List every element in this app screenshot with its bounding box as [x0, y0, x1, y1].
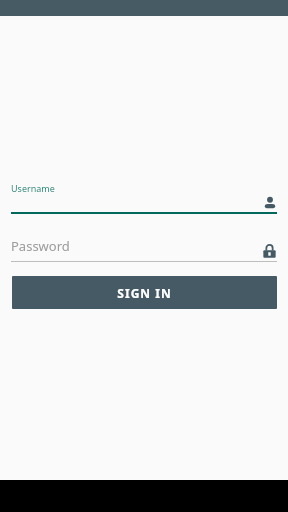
staticText: Username: [11, 182, 55, 194]
other: Password: [262, 244, 277, 259]
staticText: Password: [11, 237, 70, 255]
staticText: SIGN IN: [117, 285, 172, 301]
button[interactable]: Username: [0, 182, 288, 214]
other: Username: [263, 196, 277, 210]
button[interactable]: Password: [0, 237, 288, 262]
button[interactable]: SIGN IN: [12, 276, 277, 309]
